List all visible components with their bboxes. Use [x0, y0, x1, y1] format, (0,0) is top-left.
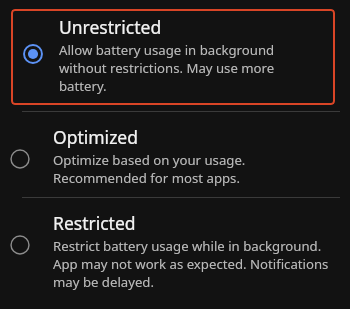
staticText: Restricted — [53, 211, 136, 235]
staticText: Restrict battery usage while in backgrou… — [53, 237, 336, 291]
button[interactable]: Restricted — [0, 198, 350, 301]
other: Optimized — [7, 146, 33, 172]
staticText: Optimize based on your usage. Recommende… — [53, 151, 246, 187]
staticText: Optimized — [53, 125, 138, 149]
button[interactable]: Optimized — [0, 112, 350, 197]
button[interactable]: Unrestricted — [11, 9, 335, 105]
other: Unrestricted — [20, 41, 46, 67]
staticText: Unrestricted — [59, 15, 162, 39]
staticText: Allow battery usage in background withou… — [59, 41, 315, 95]
other: Restricted — [7, 232, 33, 258]
